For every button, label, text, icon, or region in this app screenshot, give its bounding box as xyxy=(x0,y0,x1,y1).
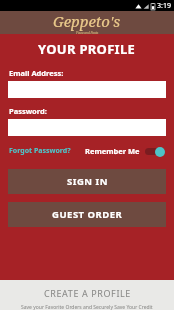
staticText: Pizza and Pasta xyxy=(76,31,99,34)
button[interactable]: GUEST ORDER xyxy=(8,202,166,227)
button[interactable]: Remember Me toggle xyxy=(144,146,165,157)
staticText: 3:19 xyxy=(157,1,171,11)
staticText: YOUR PROFILE xyxy=(38,40,136,58)
staticText: Geppeto's xyxy=(53,11,121,31)
button[interactable]: SIGN IN xyxy=(8,169,166,194)
staticText: Save your Favorite Orders and Securely S… xyxy=(21,304,153,310)
staticText: Remember Me xyxy=(85,146,140,156)
staticText: SIGN IN xyxy=(67,175,108,188)
staticText: Password: xyxy=(9,106,47,116)
button[interactable]: CREATE A PROFILE xyxy=(0,280,174,310)
staticText: Email Address: xyxy=(9,68,64,78)
button[interactable]: Forgot Password? xyxy=(9,146,71,156)
staticText: GUEST ORDER xyxy=(52,208,123,221)
staticText: Forgot Password? xyxy=(9,146,71,156)
staticText: CREATE A PROFILE xyxy=(44,287,131,299)
